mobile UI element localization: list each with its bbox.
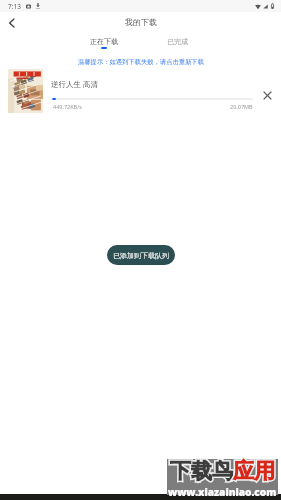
- staticText: 我的下载: [125, 17, 157, 27]
- staticText: 7:13: [8, 2, 21, 11]
- button[interactable]: Remove download: [256, 84, 279, 107]
- button[interactable]: Back: [0, 11, 23, 34]
- staticText: 已添加到下载队列: [113, 251, 169, 260]
- staticText: 温馨提示：如遇到下载失败，请点击重新下载: [78, 58, 204, 66]
- staticText: 应用: [233, 458, 275, 484]
- staticText: 下载鸟: [170, 458, 233, 484]
- staticText: 正在下载: [90, 37, 118, 46]
- staticText: www.xiazainiao.com: [168, 485, 277, 499]
- staticText: 已完成: [167, 37, 188, 46]
- button[interactable]: 逆行人生 高清: [0, 69, 281, 115]
- button[interactable]: 正在下载: [88, 37, 120, 51]
- staticText: 下载鸟: [170, 458, 233, 484]
- button[interactable]: 已添加到下载队列: [107, 245, 175, 265]
- staticText: 逆行人生 高清: [51, 79, 98, 89]
- staticText: 20.07MB: [230, 103, 253, 110]
- button[interactable]: 已完成: [165, 37, 189, 51]
- staticText: 应用: [233, 458, 275, 484]
- staticText: 449.72KB/s: [53, 103, 82, 110]
